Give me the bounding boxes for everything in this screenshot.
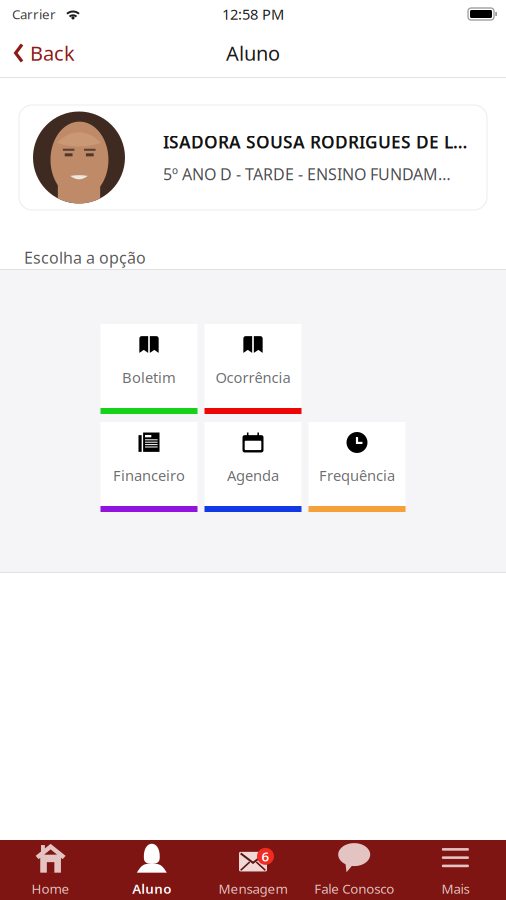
staticText: Aluno: [132, 880, 171, 897]
button[interactable]: Mais: [405, 840, 506, 900]
staticText: Frequência: [319, 465, 395, 485]
staticText: 12:58 PM: [222, 4, 284, 24]
staticText: Boletim: [122, 367, 176, 387]
staticText: Fale Conosco: [314, 880, 394, 897]
button[interactable]: Home: [0, 840, 101, 900]
staticText: ISADORA SOUSA RODRIGUES DE L…: [163, 130, 467, 153]
staticText: Mais: [441, 880, 469, 897]
button[interactable]: Fale Conosco: [304, 840, 405, 900]
button[interactable]: Agenda: [204, 422, 301, 512]
staticText: Mensagem: [218, 880, 287, 897]
staticText: Financeiro: [113, 465, 185, 485]
staticText: Home: [32, 880, 70, 897]
button[interactable]: Back: [0, 31, 85, 75]
button[interactable]: Financeiro: [100, 422, 197, 512]
button[interactable]: ISADORA SOUSA RODRIGUES DE L…: [19, 105, 487, 210]
staticText: Agenda: [227, 465, 279, 485]
button[interactable]: 6: [202, 840, 304, 900]
staticText: Ocorrência: [215, 367, 290, 387]
staticText: Back: [30, 40, 75, 66]
button[interactable]: Frequência: [308, 422, 405, 512]
button[interactable]: Aluno: [101, 840, 202, 900]
staticText: Aluno: [226, 40, 280, 66]
button[interactable]: Boletim: [100, 324, 197, 414]
staticText: 6: [261, 847, 269, 865]
staticText: Escolha a opção: [24, 247, 146, 268]
staticText: Carrier: [12, 5, 56, 23]
staticText: 5º ANO D - TARDE - ENSINO FUNDAM…: [163, 163, 451, 185]
button[interactable]: Ocorrência: [204, 324, 301, 414]
